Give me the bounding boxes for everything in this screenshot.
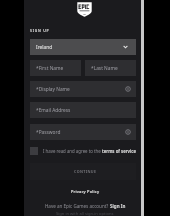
button[interactable]: *Display Name — [30, 81, 136, 97]
button[interactable]: *Password — [30, 124, 136, 140]
button[interactable]: I have read and agree to the — [30, 146, 136, 155]
staticText: *First Name — [36, 65, 64, 72]
button[interactable]: *Last Name — [85, 60, 136, 76]
button[interactable]: *First Name — [30, 60, 81, 76]
staticText: I have read and agree to the — [43, 148, 102, 154]
staticText: SIGN UP — [30, 28, 50, 33]
other: More information — [125, 129, 131, 135]
staticText: Ireland — [36, 44, 53, 51]
other: More information — [125, 86, 131, 92]
other: Epic Games logo — [77, 2, 92, 17]
staticText: *Password — [36, 129, 61, 136]
staticText: terms of service — [102, 148, 136, 154]
button[interactable]: Ireland — [30, 39, 136, 55]
other: Expand — [123, 45, 128, 49]
button[interactable]: CONTINUE — [30, 163, 136, 180]
button[interactable]: *Email Address — [30, 102, 136, 118]
button[interactable]: Sign In — [110, 203, 126, 209]
staticText: *Last Name — [91, 65, 118, 72]
staticText: Privacy Policy — [71, 189, 100, 194]
staticText: Sign in with all sign-in options — [56, 211, 114, 216]
staticText: *Email Address — [36, 107, 71, 114]
staticText: Sign In — [110, 203, 126, 209]
button[interactable]: Privacy Policy — [32, 187, 138, 196]
staticText: *Display Name — [36, 86, 70, 93]
staticText: Have an Epic Games account? — [45, 203, 110, 209]
staticText: CONTINUE — [74, 169, 97, 174]
